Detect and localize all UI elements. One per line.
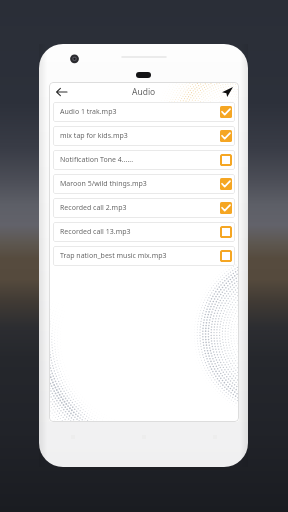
button[interactable]: Recorded call 2.mp3 [53,198,235,218]
staticText: Audio 1 trak.mp3 [60,107,220,117]
button[interactable]: mix tap for kids.mp3 [53,126,235,146]
staticText: Trap nation_best music mix.mp3 [60,251,220,261]
staticText: Recorded call 2.mp3 [60,203,220,213]
button[interactable]: Trap nation_best music mix.mp3 [53,246,235,266]
staticText: Maroon 5/wild things.mp3 [60,179,220,189]
button[interactable]: Recorded call 13.mp3 [53,222,235,242]
button[interactable]: Notification Tone 4...... [53,150,235,170]
staticText: Notification Tone 4...... [60,155,220,165]
staticText: Audio [132,86,156,98]
staticText: mix tap for kids.mp3 [60,131,220,141]
button[interactable]: Maroon 5/wild things.mp3 [53,174,235,194]
button[interactable]: Audio 1 trak.mp3 [53,102,235,122]
button[interactable]: Send [219,84,235,100]
button[interactable]: Back [53,84,69,100]
staticText: Recorded call 13.mp3 [60,227,220,237]
